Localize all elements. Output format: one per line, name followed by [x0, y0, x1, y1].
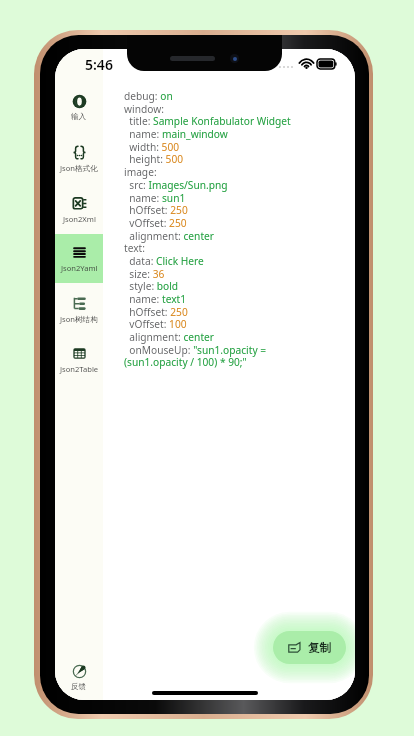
button[interactable]: Json树结构: [55, 285, 103, 334]
staticText: vOffset: 100: [124, 317, 187, 331]
staticText: 输入: [71, 112, 87, 122]
staticText: width: 500: [124, 140, 180, 154]
staticText: name: main_window: [124, 127, 228, 141]
staticText: alignment: center: [124, 229, 215, 243]
button[interactable]: 输入: [55, 83, 103, 132]
button[interactable]: Json2Table: [55, 335, 103, 384]
staticText: name: sun1: [124, 191, 186, 205]
staticText: Json2Xml: [63, 214, 96, 224]
staticText: src: Images/Sun.png: [124, 178, 228, 192]
staticText: name: text1: [124, 292, 187, 306]
button[interactable]: Json格式化: [55, 134, 103, 183]
button[interactable]: 反馈: [55, 653, 103, 700]
staticText: 复制: [308, 641, 331, 655]
button[interactable]: Json2Xml: [55, 185, 103, 234]
staticText: hOffset: 250: [124, 305, 188, 319]
staticText: Json格式化: [60, 163, 98, 173]
staticText: image:: [124, 165, 157, 179]
staticText: debug: on: [124, 89, 173, 103]
staticText: alignment: center: [124, 330, 215, 344]
staticText: style: bold: [124, 279, 179, 293]
staticText: vOffset: 250: [124, 216, 187, 230]
staticText: size: 36: [124, 267, 165, 281]
staticText: height: 500: [124, 152, 184, 166]
staticText: Json树结构: [60, 314, 98, 324]
staticText: onMouseUp: "sun1.opacity =: [124, 343, 267, 357]
staticText: title: Sample Konfabulator Widget: [124, 114, 291, 128]
staticText: Json2Yaml: [61, 263, 98, 273]
button[interactable]: 复制: [273, 631, 346, 664]
staticText: text:: [124, 241, 146, 255]
staticText: hOffset: 250: [124, 203, 188, 217]
staticText: Json2Table: [60, 364, 99, 374]
staticText: (sun1.opacity / 100) * 90;": [124, 355, 247, 369]
staticText: 反馈: [71, 682, 87, 692]
staticText: 5:46: [85, 55, 113, 74]
button[interactable]: Json2Yaml: [55, 234, 103, 283]
staticText: data: Click Here: [124, 254, 204, 268]
staticText: window:: [124, 102, 164, 116]
